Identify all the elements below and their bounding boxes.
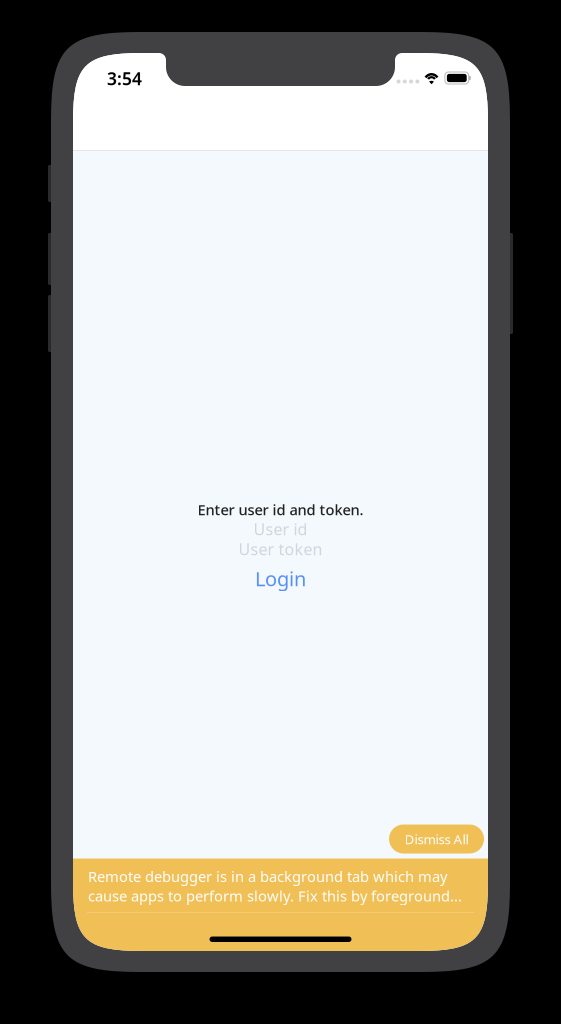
staticText: User id [253, 518, 307, 540]
button[interactable]: Dismiss All [389, 824, 484, 853]
button[interactable]: Remote debugger is in a background tab w… [73, 858, 488, 951]
staticText: User token [238, 538, 322, 560]
staticText: Dismiss All [404, 830, 468, 848]
staticText: Login [255, 565, 306, 592]
staticText: Remote debugger is in a background tab w… [88, 866, 462, 905]
button[interactable]: Login [210, 559, 350, 592]
staticText: 3:54 [107, 67, 142, 90]
staticText: Enter user id and token. [197, 500, 363, 519]
